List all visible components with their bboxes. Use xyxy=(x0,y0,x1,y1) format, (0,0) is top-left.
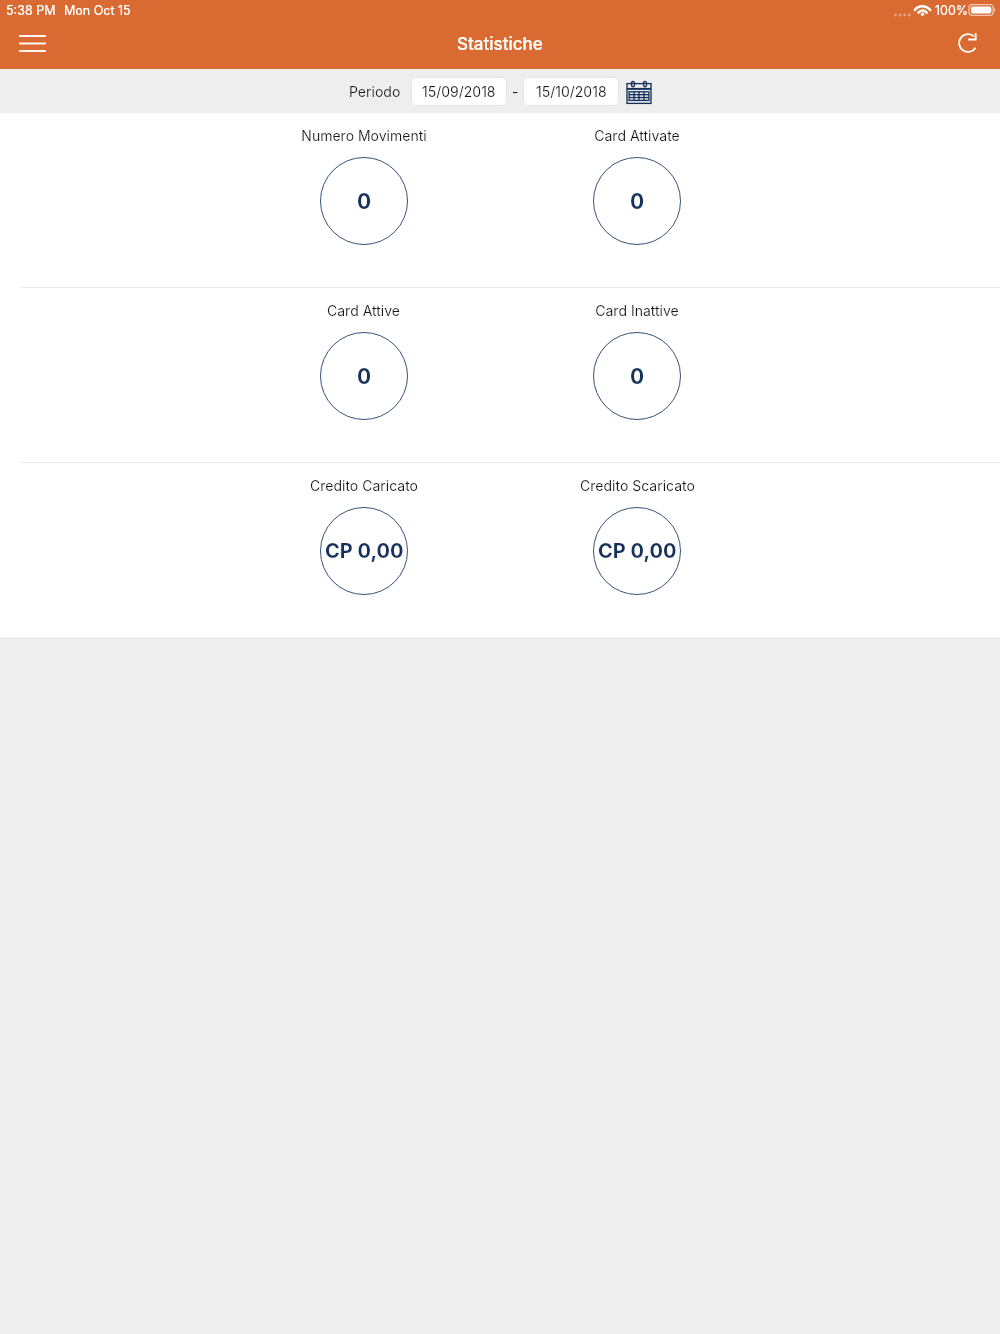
button[interactable]: 15/09/2018 xyxy=(411,77,507,106)
staticText: Numero Movimenti xyxy=(301,127,427,144)
button[interactable]: Numero Movimenti xyxy=(227,113,500,287)
staticText: 15/10/2018 xyxy=(536,83,607,100)
staticText: 5:38 PM xyxy=(6,3,56,18)
staticText: Card Attive xyxy=(327,302,400,319)
staticText: 100% xyxy=(935,3,969,18)
button[interactable]: Menu xyxy=(0,21,64,65)
staticText: - xyxy=(512,83,519,100)
button[interactable]: Credito Caricato xyxy=(227,463,500,637)
staticText: 0 xyxy=(630,364,645,389)
staticText: Credito Scaricato xyxy=(580,477,695,494)
button[interactable]: Card Inattive xyxy=(500,288,774,462)
staticText: 0 xyxy=(357,189,372,214)
staticText: CP 0,00 xyxy=(325,539,404,563)
button[interactable]: Card Attive xyxy=(227,288,500,462)
button[interactable]: Card Attivate xyxy=(500,113,774,287)
button[interactable]: Select date range xyxy=(626,79,652,105)
button[interactable]: Refresh xyxy=(938,21,998,65)
staticText: 0 xyxy=(630,189,645,214)
staticText: 0 xyxy=(357,364,372,389)
staticText: Card Attivate xyxy=(594,127,680,144)
staticText: Card Inattive xyxy=(595,302,679,319)
button[interactable]: 15/10/2018 xyxy=(523,77,619,106)
staticText: Periodo xyxy=(349,83,401,100)
staticText: Statistiche xyxy=(457,34,543,55)
staticText: Mon Oct 15 xyxy=(64,3,131,18)
staticText: Credito Caricato xyxy=(310,477,418,494)
staticText: CP 0,00 xyxy=(598,539,677,563)
button[interactable]: Credito Scaricato xyxy=(500,463,774,637)
staticText: 15/09/2018 xyxy=(422,83,496,100)
